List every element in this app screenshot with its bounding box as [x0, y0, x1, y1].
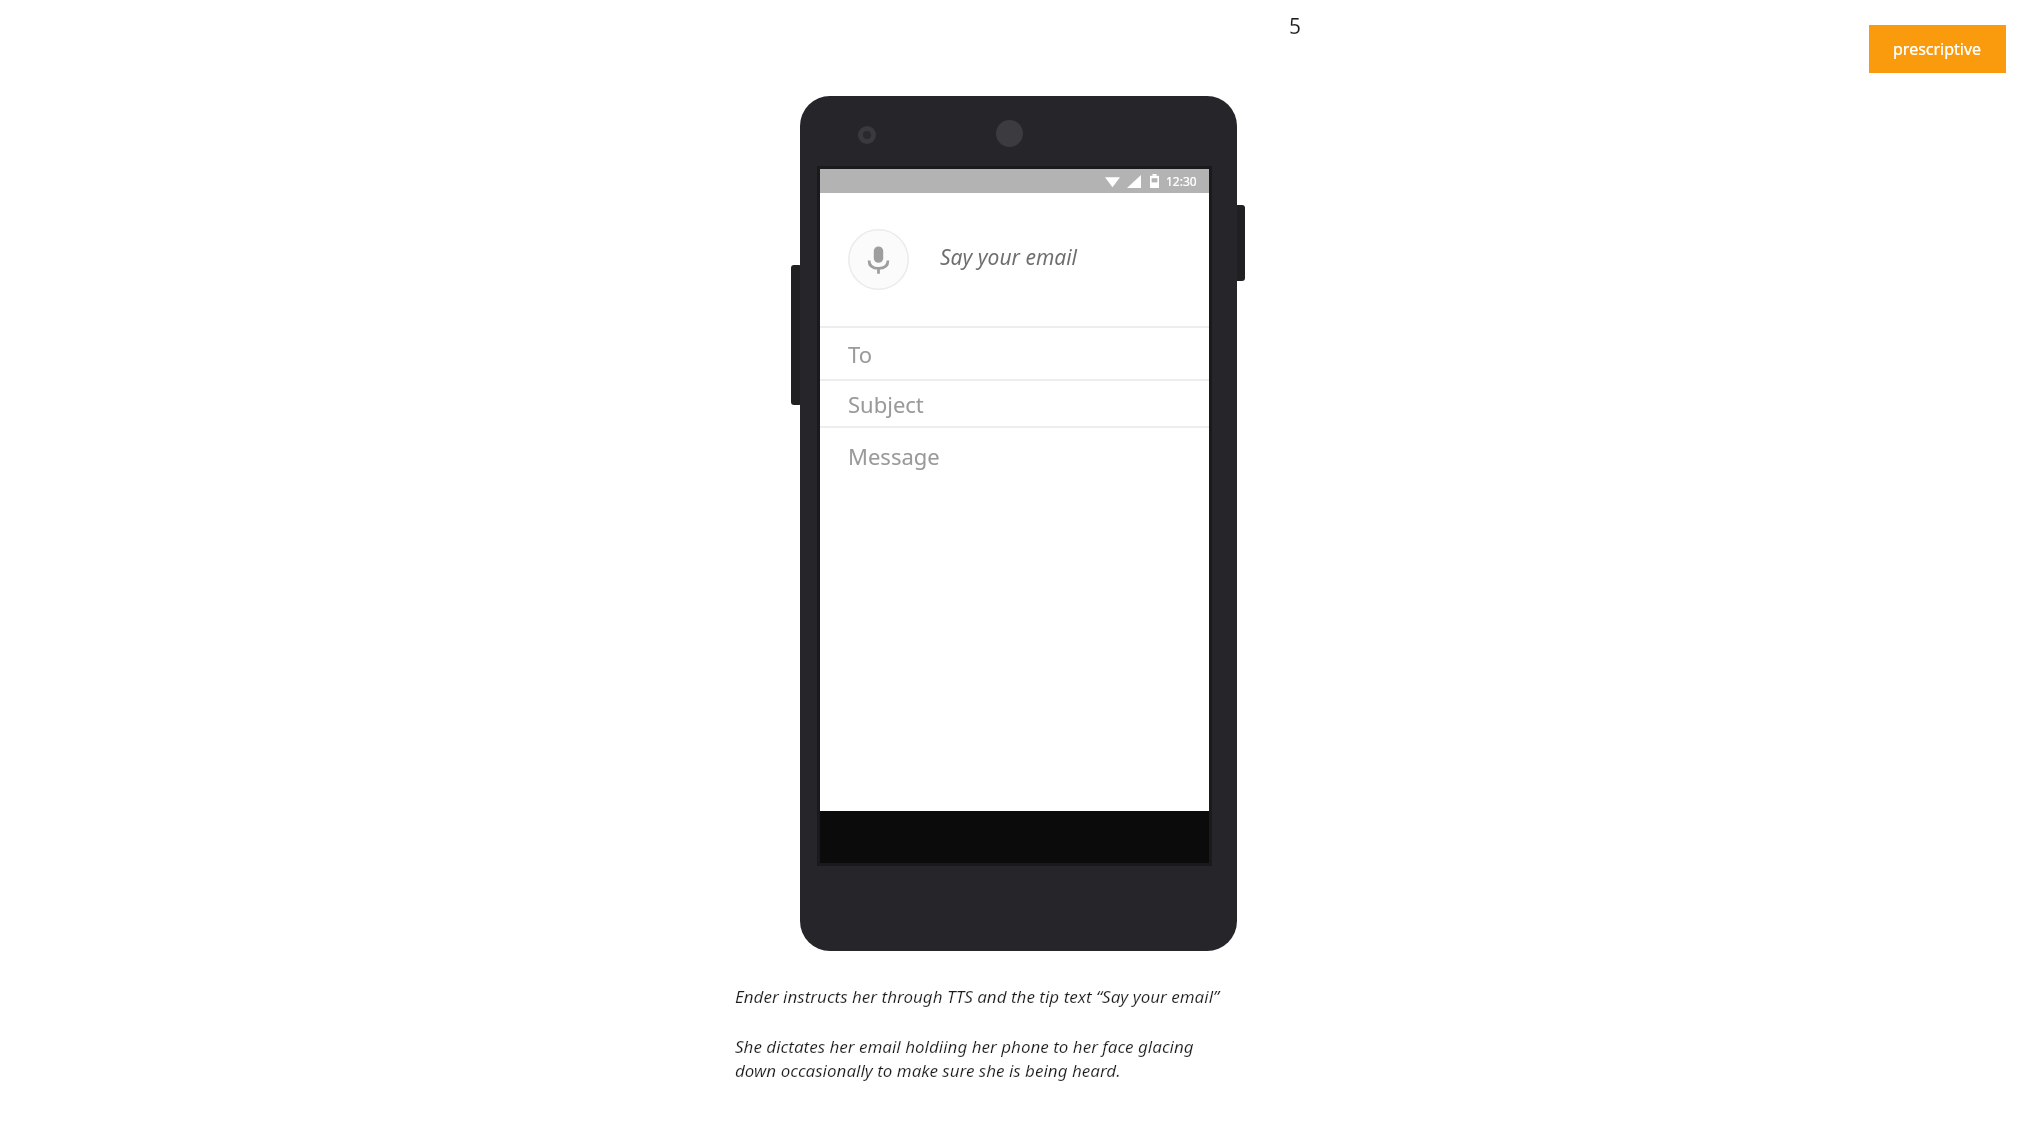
- staticText: Subject: [848, 389, 924, 419]
- staticText: 5: [1289, 12, 1302, 41]
- staticText: 12:30: [1166, 173, 1197, 189]
- button[interactable]: prescriptive: [1869, 25, 2006, 73]
- staticText: She dictates her email holdiing her phon…: [735, 1035, 1194, 1082]
- button[interactable]: Start voice dictation: [848, 229, 909, 290]
- button[interactable]: Message: [820, 428, 1209, 811]
- staticText: prescriptive: [1893, 38, 1982, 60]
- staticText: Say your email: [940, 243, 1078, 272]
- staticText: To: [848, 339, 873, 369]
- button[interactable]: To: [820, 328, 1209, 379]
- staticText: Message: [848, 441, 940, 471]
- button[interactable]: Subject: [820, 381, 1209, 426]
- button[interactable]: Start voice dictation: [820, 193, 1209, 326]
- staticText: Ender instructs her through TTS and the …: [735, 985, 1220, 1008]
